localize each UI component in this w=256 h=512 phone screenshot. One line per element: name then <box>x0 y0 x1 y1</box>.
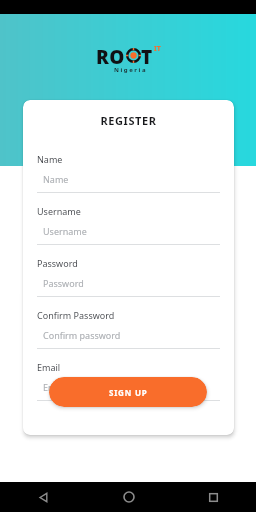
staticText: SIGN UP <box>109 387 148 398</box>
button[interactable]: Password <box>37 257 220 297</box>
staticText: Email <box>37 361 61 373</box>
staticText: Confirm Password <box>37 309 115 321</box>
staticText: REGISTER <box>37 113 220 128</box>
button[interactable]: Recent apps <box>171 482 256 512</box>
staticText: Username <box>43 225 87 237</box>
staticText: N i g e r i a <box>114 66 146 74</box>
button[interactable]: Back <box>0 482 86 512</box>
button[interactable]: Username <box>37 205 220 245</box>
staticText: Name <box>37 153 63 165</box>
staticText: T <box>141 44 153 70</box>
staticText: RO <box>96 44 126 70</box>
staticText: Confirm password <box>43 329 121 341</box>
button[interactable]: Name <box>37 153 220 193</box>
button[interactable]: SIGN UP <box>49 377 207 407</box>
staticText: Email <box>43 381 67 393</box>
button[interactable]: Confirm Password <box>37 309 220 349</box>
staticText: IT <box>154 44 161 54</box>
button[interactable]: Home <box>86 482 171 512</box>
button[interactable]: Email <box>37 361 220 401</box>
staticText: Username <box>37 205 81 217</box>
staticText: Password <box>43 277 84 289</box>
staticText: Password <box>37 257 78 269</box>
staticText: Name <box>43 173 69 185</box>
